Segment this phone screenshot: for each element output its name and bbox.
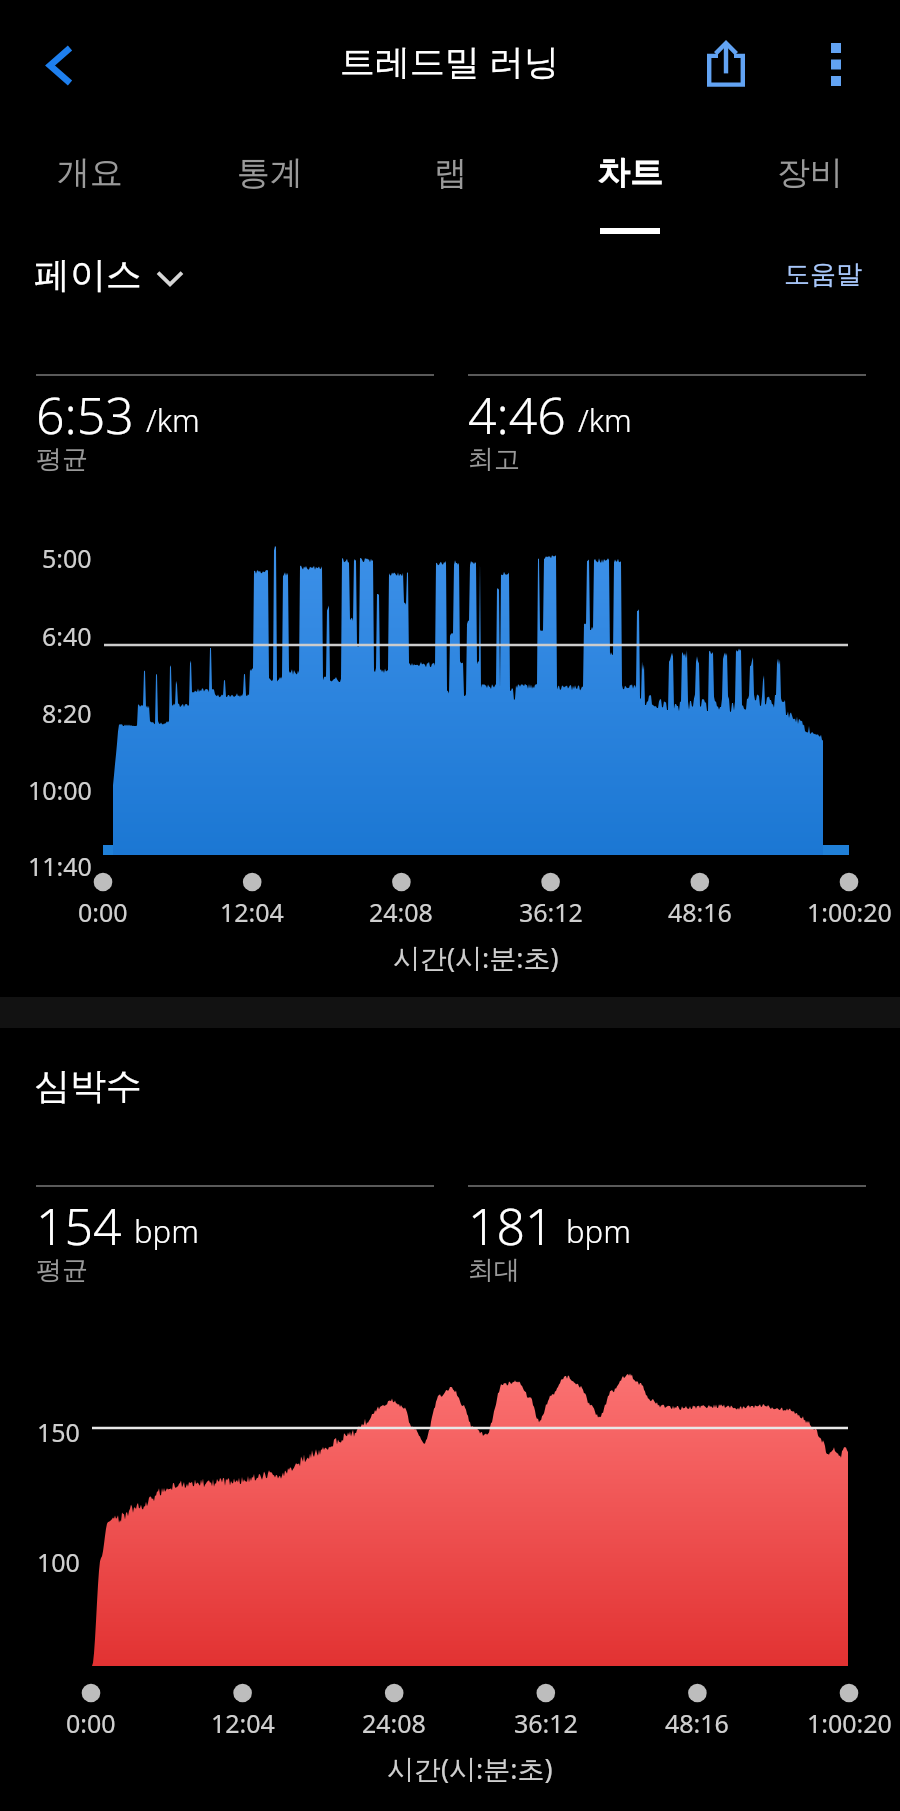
button[interactable]: 랩 [360,130,540,240]
staticText: 8:20 [42,696,92,730]
button[interactable]: 차트 [540,130,720,240]
staticText: 48:16 [665,1706,729,1740]
staticText: 개요 [57,152,123,194]
staticText: 0:00 [66,1706,116,1740]
staticText: 심박수 [34,1063,142,1108]
staticText: 11:40 [28,849,92,883]
staticText: 12:04 [220,895,284,929]
staticText: 36:12 [519,895,583,929]
button[interactable]: 페이스 [34,252,184,297]
staticText: 시간(시:분:초) [387,1750,553,1787]
staticText: 도움말 [784,258,862,291]
staticText: 12:04 [211,1706,275,1740]
button[interactable]: 도움말 [784,258,862,291]
staticText: 10:00 [28,773,92,807]
staticText: 1:00:20 [807,895,892,929]
staticText: 4:46 [468,381,566,449]
staticText: 24:08 [362,1706,426,1740]
staticText: 6:53 [36,381,134,449]
staticText: /km [146,399,200,441]
staticText: 154 [36,1192,122,1260]
staticText: 24:08 [369,895,433,929]
staticText: /km [578,399,632,441]
staticText: 0:00 [78,895,128,929]
staticText: 시간(시:분:초) [393,939,559,976]
staticText: 장비 [777,152,843,194]
button[interactable]: 장비 [720,130,900,240]
button[interactable]: More options [793,21,879,107]
button[interactable]: Share [683,20,769,106]
staticText: 최대 [468,1254,520,1287]
staticText: 48:16 [668,895,732,929]
staticText: 100 [37,1545,80,1579]
button[interactable]: 개요 [0,130,180,240]
staticText: 차트 [597,152,663,194]
staticText: 최고 [468,443,520,476]
staticText: bpm [134,1210,199,1252]
staticText: 36:12 [514,1706,578,1740]
staticText: 6:40 [42,619,92,653]
button[interactable]: 통계 [180,130,360,240]
staticText: 181 [468,1192,554,1260]
staticText: 150 [37,1415,80,1449]
staticText: 트레드밀 러닝 [340,37,560,85]
staticText: 평균 [36,1254,88,1287]
staticText: 페이스 [34,252,142,297]
staticText: bpm [566,1210,631,1252]
staticText: 5:00 [42,541,92,575]
button[interactable]: Back [18,23,102,107]
staticText: 평균 [36,443,88,476]
staticText: 1:00:20 [807,1706,892,1740]
staticText: 통계 [237,152,303,194]
staticText: 랩 [434,152,467,194]
